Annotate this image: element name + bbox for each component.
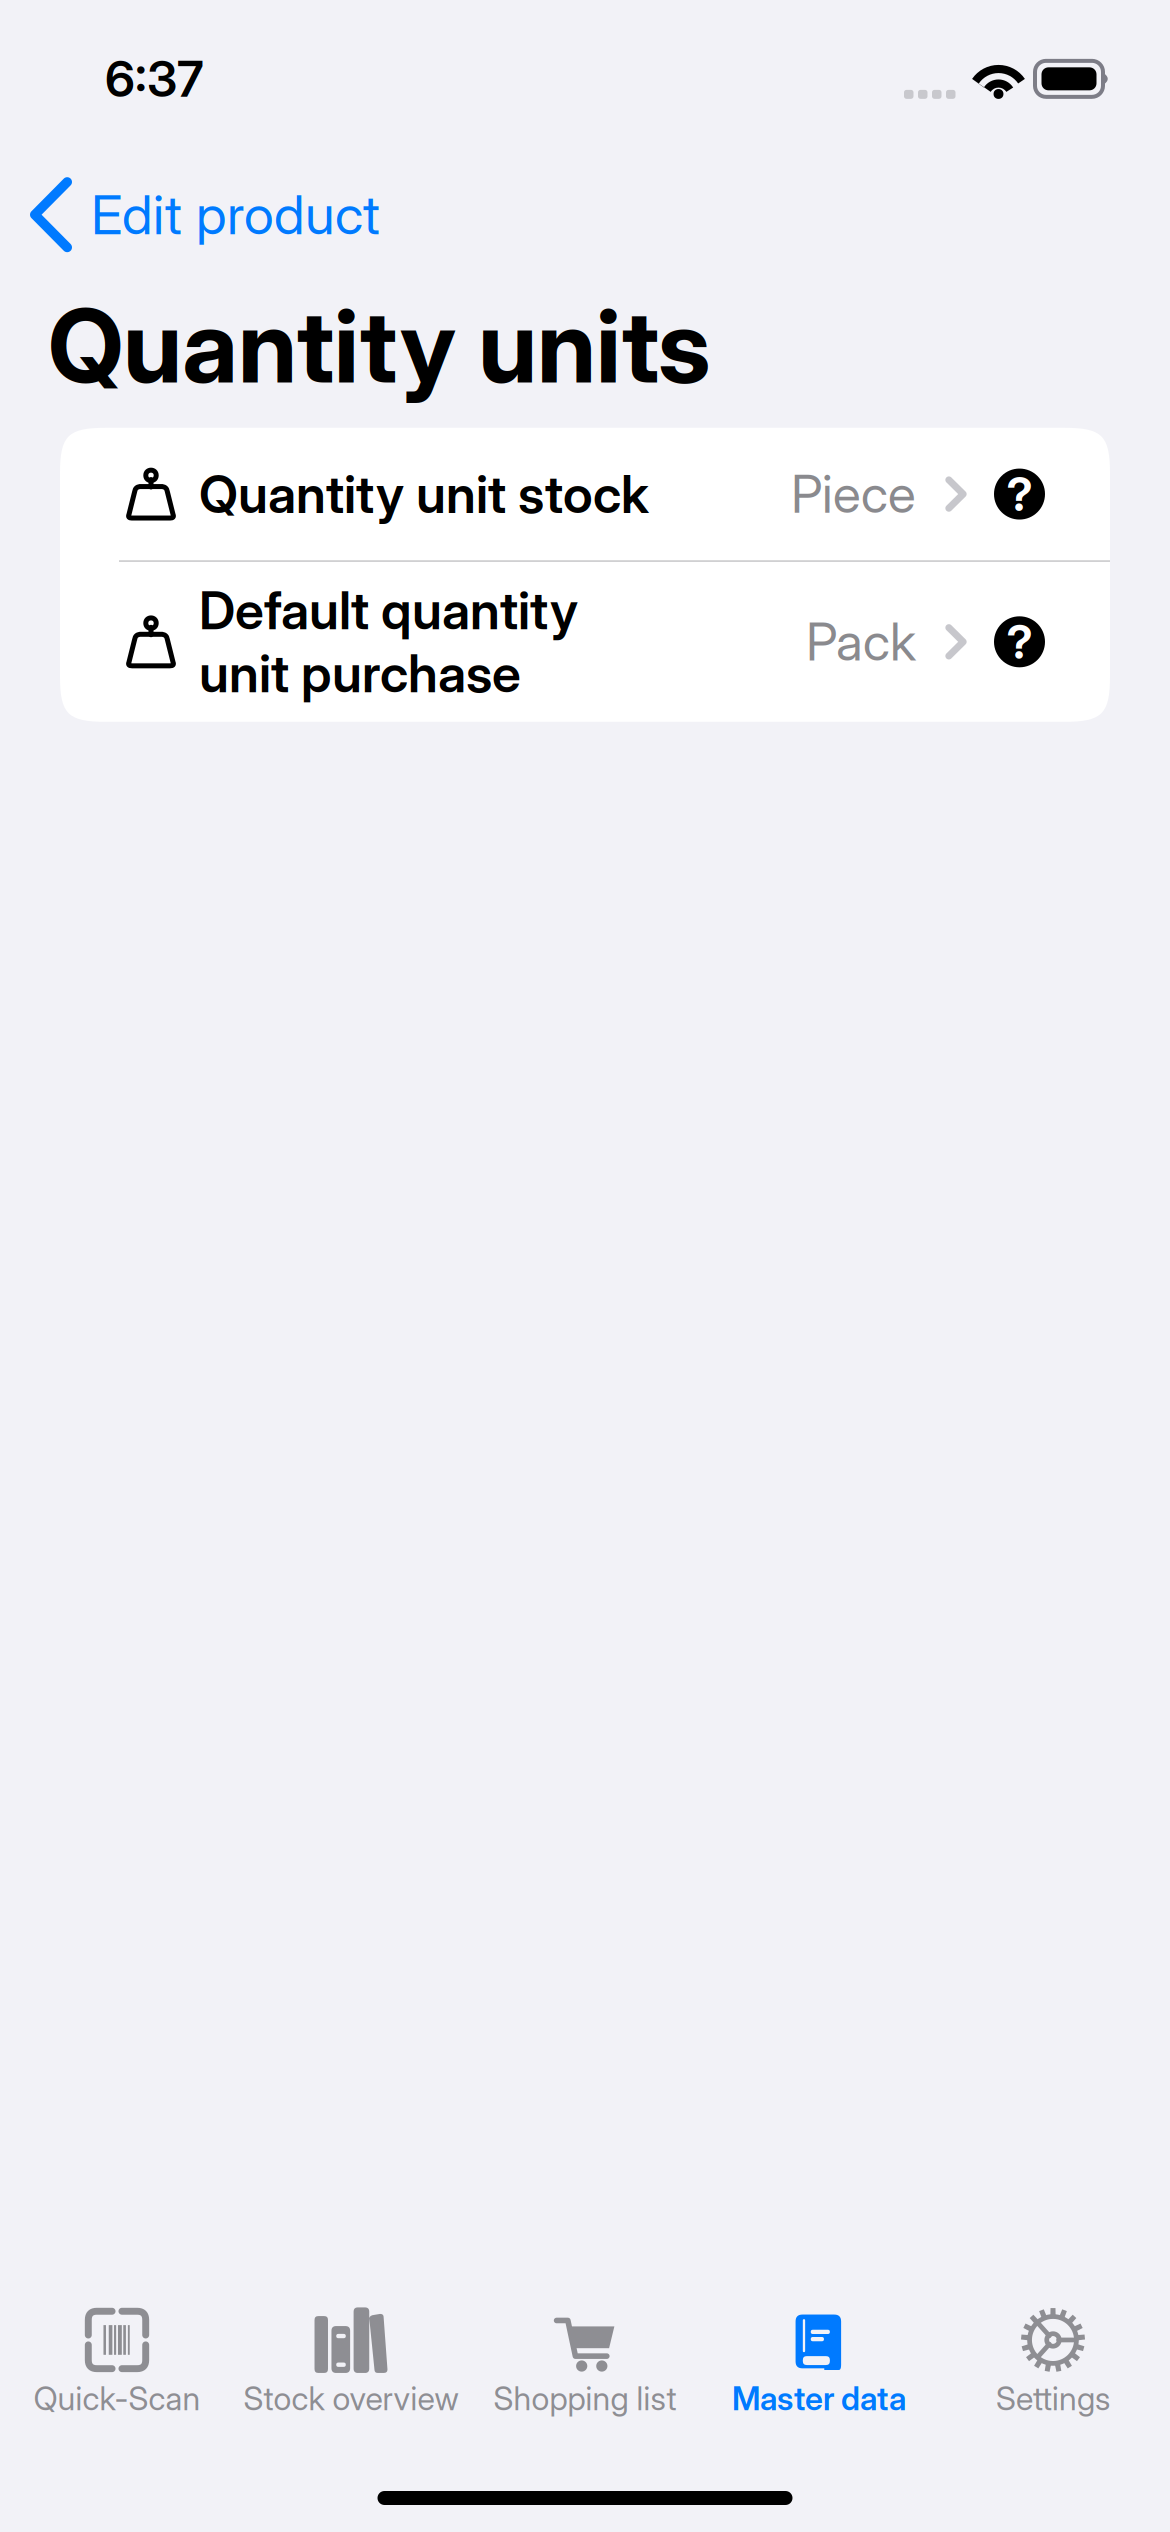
button[interactable]: Edit product [18,176,392,254]
staticText: ? [1006,614,1032,670]
staticText: 6:37 [105,49,204,109]
button[interactable]: Shopping list [468,2307,702,2418]
button[interactable]: Stock overview [234,2307,468,2418]
staticText: Default quantity unit purchase [199,579,578,705]
staticText: Piece [791,463,916,525]
button[interactable]: Default quantity unit purchase [60,562,1110,722]
staticText: ? [1006,466,1032,522]
staticText: Quick-Scan [33,2379,200,2418]
staticText: Pack [806,611,916,673]
staticText: Quantity unit stock [199,463,649,525]
staticText: Edit product [91,182,380,247]
staticText: Stock overview [243,2379,458,2418]
staticText: Master data [732,2379,906,2418]
staticText: Settings [996,2379,1110,2418]
button[interactable]: Settings [936,2307,1170,2418]
button[interactable]: Master data [702,2307,936,2418]
staticText: Shopping list [493,2379,676,2418]
button[interactable]: Quick-Scan [0,2307,234,2418]
button[interactable]: Quantity unit stock [60,428,1110,560]
staticText: Quantity units [48,285,710,407]
